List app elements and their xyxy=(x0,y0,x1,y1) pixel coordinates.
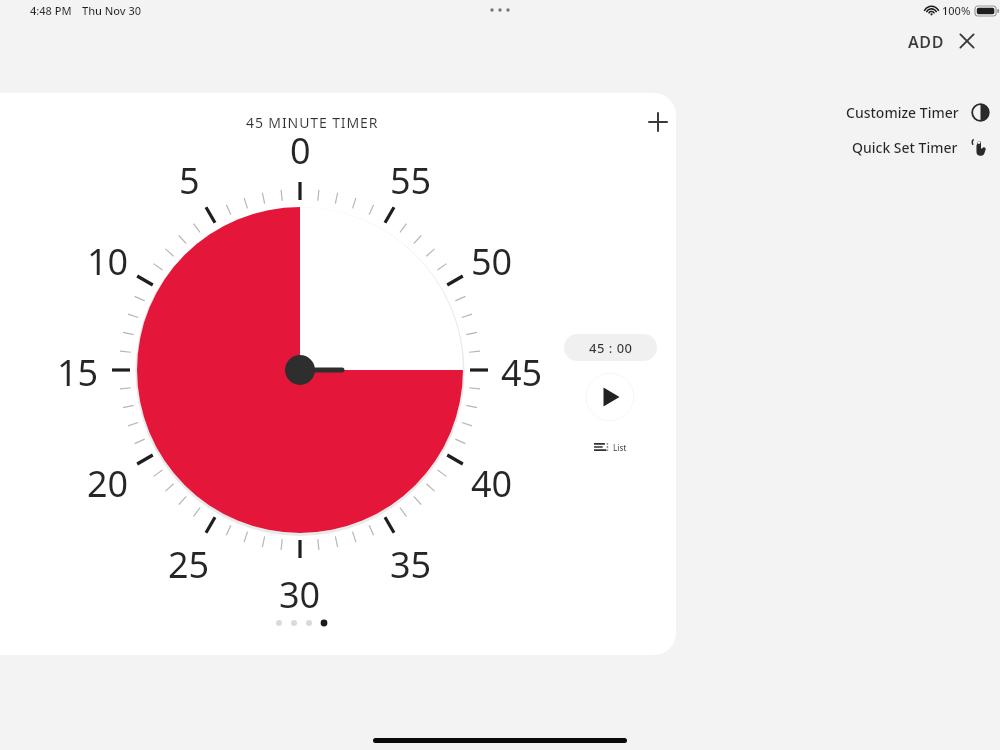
staticText: 50 xyxy=(471,237,513,281)
staticText: 100% xyxy=(942,3,971,18)
button[interactable]: Quick Set Timer xyxy=(844,133,997,162)
button[interactable]: Add timer xyxy=(643,107,673,137)
staticText: Thu Nov 30 xyxy=(82,3,142,18)
staticText: 25 xyxy=(168,540,210,584)
staticText: 45 : 00 xyxy=(589,339,633,357)
button[interactable]: ADD xyxy=(902,27,950,57)
staticText: ADD xyxy=(908,31,944,53)
staticText: 35 xyxy=(390,540,432,584)
button[interactable]: List xyxy=(578,433,643,461)
staticText: Customize Timer xyxy=(846,103,959,122)
staticText: 30 xyxy=(279,570,321,614)
staticText: List xyxy=(613,442,627,453)
staticText: 5 xyxy=(179,156,200,200)
staticText: 10 xyxy=(87,237,129,281)
staticText: 40 xyxy=(471,459,513,503)
staticText: 55 xyxy=(390,156,432,200)
button[interactable]: Start timer xyxy=(586,373,634,421)
staticText: 4:48 PM xyxy=(30,3,72,18)
button[interactable]: Customize Timer xyxy=(838,98,998,127)
staticText: 15 xyxy=(57,348,99,392)
staticText: 45 MINUTE TIMER xyxy=(246,113,379,132)
button[interactable]: Close xyxy=(952,26,982,56)
staticText: 0 xyxy=(290,126,311,170)
staticText: 45 xyxy=(501,348,543,392)
button[interactable]: 45 : 00 xyxy=(564,334,657,361)
staticText: Quick Set Timer xyxy=(852,138,958,157)
staticText: 20 xyxy=(87,459,129,503)
button[interactable] xyxy=(60,130,540,610)
